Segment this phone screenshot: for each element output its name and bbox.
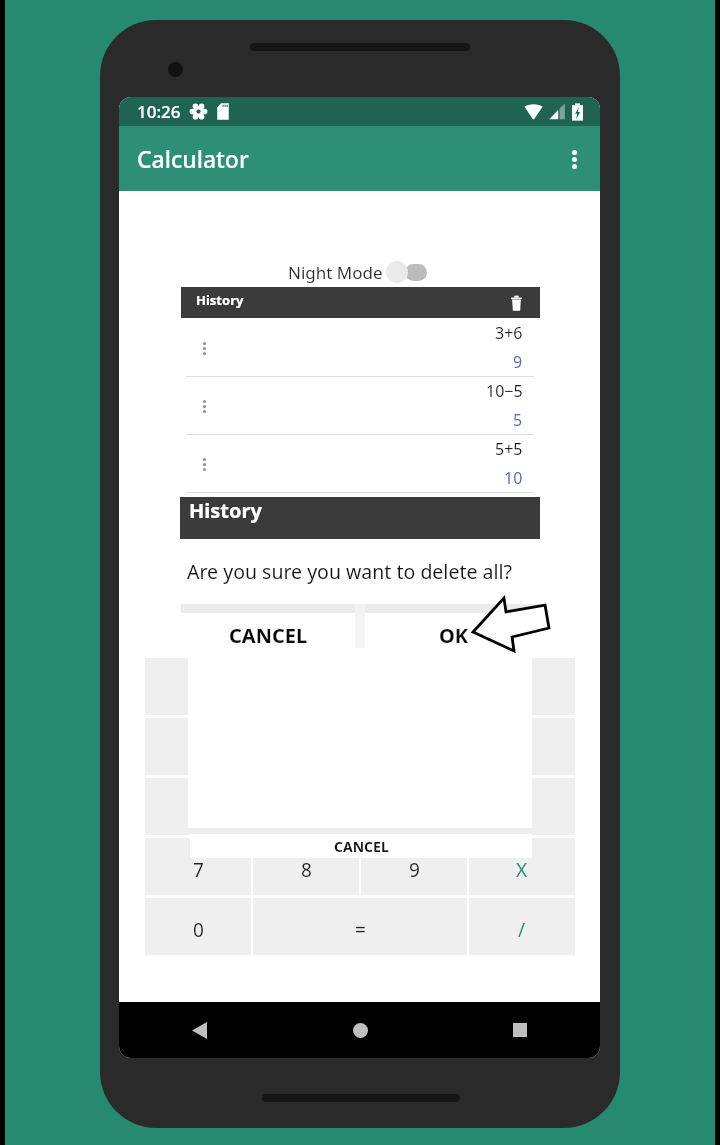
staticText: History xyxy=(189,497,262,524)
button[interactable]: Entry options xyxy=(186,377,534,434)
button[interactable]: Back xyxy=(119,1002,280,1058)
button[interactable]: 8 xyxy=(253,838,359,895)
button[interactable]: Home xyxy=(280,1002,440,1058)
staticText: 10−5 xyxy=(486,380,523,402)
staticText: 5+5 xyxy=(495,438,523,460)
staticText: 5 xyxy=(513,409,523,431)
button[interactable]: X xyxy=(469,838,575,895)
button[interactable]: CANCEL xyxy=(190,834,532,858)
button[interactable] xyxy=(469,778,575,835)
staticText: 7 xyxy=(193,857,204,883)
staticText: 10 xyxy=(504,467,523,489)
button[interactable]: Entry options xyxy=(196,340,212,356)
button[interactable]: / xyxy=(469,898,575,955)
button[interactable] xyxy=(469,658,575,715)
staticText: 8 xyxy=(301,857,312,883)
staticText: Are you sure you want to delete all? xyxy=(187,558,512,585)
staticText: 9 xyxy=(513,351,523,373)
staticText: = xyxy=(355,917,366,943)
staticText: 10:26 xyxy=(137,100,181,123)
button[interactable]: 7 xyxy=(145,838,251,895)
button[interactable]: Entry options xyxy=(186,435,534,492)
button[interactable] xyxy=(145,658,251,715)
button[interactable]: Entry options xyxy=(196,456,212,472)
button[interactable]: = xyxy=(253,898,467,955)
staticText: OK xyxy=(439,622,469,649)
button[interactable] xyxy=(361,778,467,835)
button[interactable]: Delete all history xyxy=(507,294,525,312)
button[interactable]: Entry options xyxy=(186,319,534,376)
staticText: X xyxy=(516,857,528,883)
staticText: CANCEL xyxy=(229,622,308,649)
button[interactable] xyxy=(145,718,251,775)
button[interactable]: 9 xyxy=(361,838,467,895)
staticText: History xyxy=(196,291,244,309)
staticText: 9 xyxy=(409,857,420,883)
staticText: CANCEL xyxy=(334,837,389,856)
staticText: Calculator xyxy=(137,143,249,174)
button[interactable]: Entry options xyxy=(196,398,212,414)
staticText: 0 xyxy=(193,917,204,943)
staticText: 3+6 xyxy=(495,322,523,344)
staticText: Night Mode xyxy=(288,261,383,284)
button[interactable] xyxy=(145,778,251,835)
button[interactable]: History xyxy=(181,287,540,318)
button[interactable]: Night Mode xyxy=(288,257,427,287)
button[interactable] xyxy=(253,778,359,835)
button[interactable]: OK xyxy=(365,615,541,655)
button[interactable] xyxy=(469,718,575,775)
button[interactable]: CANCEL xyxy=(181,615,355,655)
staticText: / xyxy=(518,917,526,943)
button[interactable]: Recent apps xyxy=(440,1002,600,1058)
button[interactable]: 0 xyxy=(145,898,251,955)
button[interactable]: More options xyxy=(556,141,592,177)
